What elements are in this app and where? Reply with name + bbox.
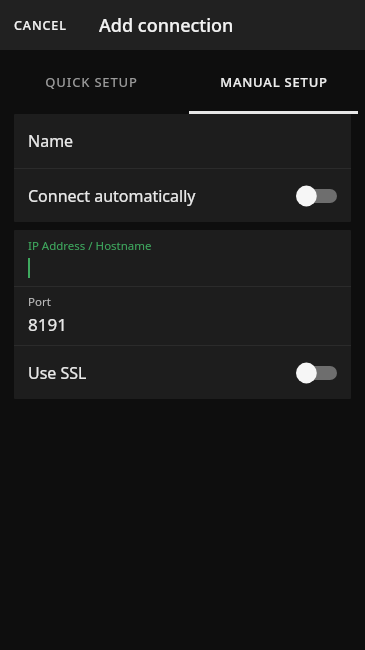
- staticText: Use SSL: [28, 362, 87, 384]
- button[interactable]: Use SSL: [14, 346, 351, 399]
- staticText: CANCEL: [14, 17, 67, 34]
- button[interactable]: IP Address / Hostname: [14, 230, 351, 286]
- staticText: Port: [28, 294, 51, 310]
- staticText: 8191: [28, 313, 67, 336]
- button[interactable]: Name: [14, 114, 351, 168]
- button[interactable]: QUICK SETUP: [0, 50, 182, 114]
- button[interactable]: Connect automatically: [14, 169, 351, 222]
- staticText: QUICK SETUP: [45, 73, 138, 91]
- button[interactable]: Port: [14, 287, 351, 345]
- staticText: MANUAL SETUP: [220, 73, 328, 91]
- button[interactable]: CANCEL: [0, 9, 81, 42]
- other: Toggle: [295, 360, 337, 386]
- staticText: Connect automatically: [28, 185, 196, 207]
- button[interactable]: MANUAL SETUP: [182, 50, 365, 114]
- staticText: Add connection: [99, 13, 234, 38]
- staticText: IP Address / Hostname: [28, 238, 152, 254]
- staticText: Name: [28, 130, 74, 152]
- other: Toggle: [295, 183, 337, 209]
